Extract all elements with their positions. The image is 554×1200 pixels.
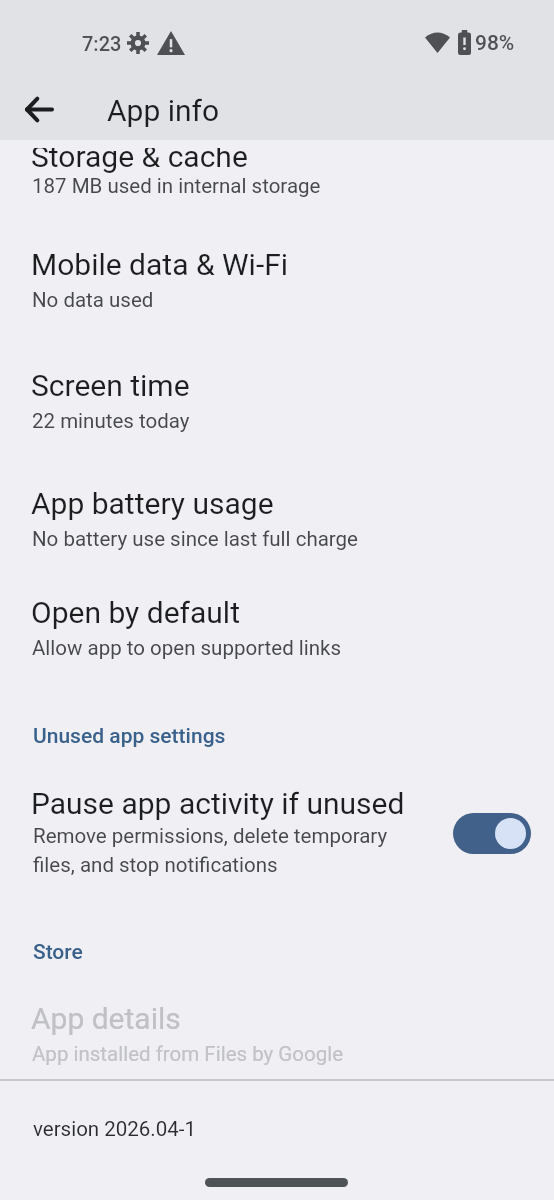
button[interactable]: Storage & cache	[0, 133, 554, 208]
staticText: Mobile data & Wi‑Fi	[31, 247, 289, 282]
staticText: Remove permissions, delete temporary fil…	[33, 824, 388, 877]
staticText: Allow app to open supported links	[32, 636, 342, 660]
button[interactable]: Pause app activity if unused	[0, 770, 554, 900]
staticText: version 2026.04-1	[33, 1117, 196, 1141]
staticText: 22 minutes today	[32, 409, 190, 433]
button[interactable]: App battery usage	[0, 445, 554, 561]
staticText: Open by default	[31, 595, 240, 630]
staticText: Screen time	[31, 368, 190, 403]
staticText: No data used	[32, 288, 154, 312]
staticText: Storage & cache	[31, 139, 248, 174]
staticText: 7:23	[82, 32, 122, 55]
staticText: Unused app settings	[33, 724, 226, 749]
button[interactable]	[26, 96, 53, 123]
button[interactable]: App details	[0, 960, 554, 1076]
button[interactable]: Mobile data & Wi‑Fi	[0, 206, 554, 322]
staticText: 98%	[475, 31, 515, 56]
staticText: No battery use since last full charge	[32, 527, 358, 551]
button[interactable]: Screen time	[0, 327, 554, 443]
staticText: App battery usage	[31, 486, 274, 521]
staticText: App installed from Files by Google	[32, 1042, 344, 1066]
button[interactable]: Open by default	[0, 554, 554, 670]
staticText: 187 MB used in internal storage	[32, 174, 321, 198]
staticText: App details	[31, 1001, 181, 1036]
staticText: Store	[33, 940, 83, 965]
staticText: Pause app activity if unused	[31, 786, 405, 821]
button[interactable]	[453, 813, 531, 854]
staticText: App info	[107, 93, 220, 128]
